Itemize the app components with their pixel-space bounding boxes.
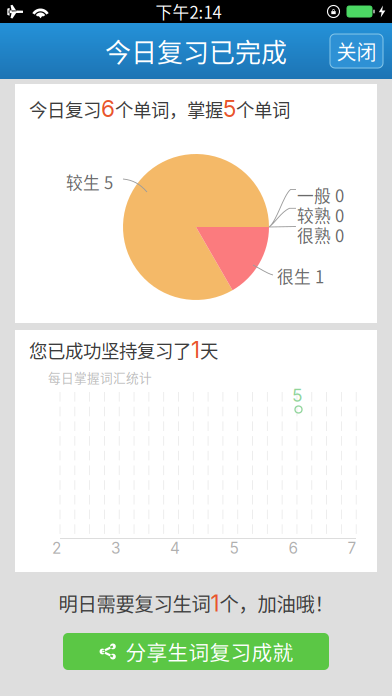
staticText: 今日复习已完成	[105, 32, 287, 70]
staticText: 很生 1	[277, 264, 324, 288]
staticText: 个单词	[236, 96, 290, 122]
staticText: 1	[210, 589, 219, 617]
staticText: 5	[229, 539, 238, 558]
staticText: 很熟 0	[297, 223, 344, 247]
staticText: 分享生词复习成就	[125, 636, 293, 666]
staticText: 一般 0	[297, 183, 344, 207]
staticText: 4	[170, 539, 180, 558]
staticText: 7	[347, 539, 356, 558]
staticText: 较熟 0	[297, 203, 344, 227]
button[interactable]: 关闭	[330, 34, 383, 68]
staticText: 2	[52, 539, 61, 558]
button[interactable]: 分享生词复习成就	[63, 633, 329, 670]
staticText: 1	[191, 336, 200, 363]
staticText: 下午2:14	[155, 0, 221, 23]
staticText: 5	[223, 95, 236, 122]
staticText: 明日需要复习生词	[58, 589, 210, 617]
staticText: 个单词，掌握	[115, 96, 223, 122]
staticText: 您已成功坚持复习了	[29, 337, 191, 363]
staticText: 每日掌握词汇统计	[48, 368, 152, 386]
staticText: 今日复习	[29, 96, 101, 122]
staticText: 关闭	[336, 36, 376, 65]
staticText: 个，加油哦！	[219, 589, 333, 617]
staticText: 6	[101, 95, 115, 122]
staticText: 3	[111, 539, 120, 558]
staticText: 5	[292, 385, 303, 406]
staticText: 较生 5	[66, 170, 113, 194]
staticText: 天	[200, 337, 218, 363]
staticText: 6	[288, 539, 298, 558]
